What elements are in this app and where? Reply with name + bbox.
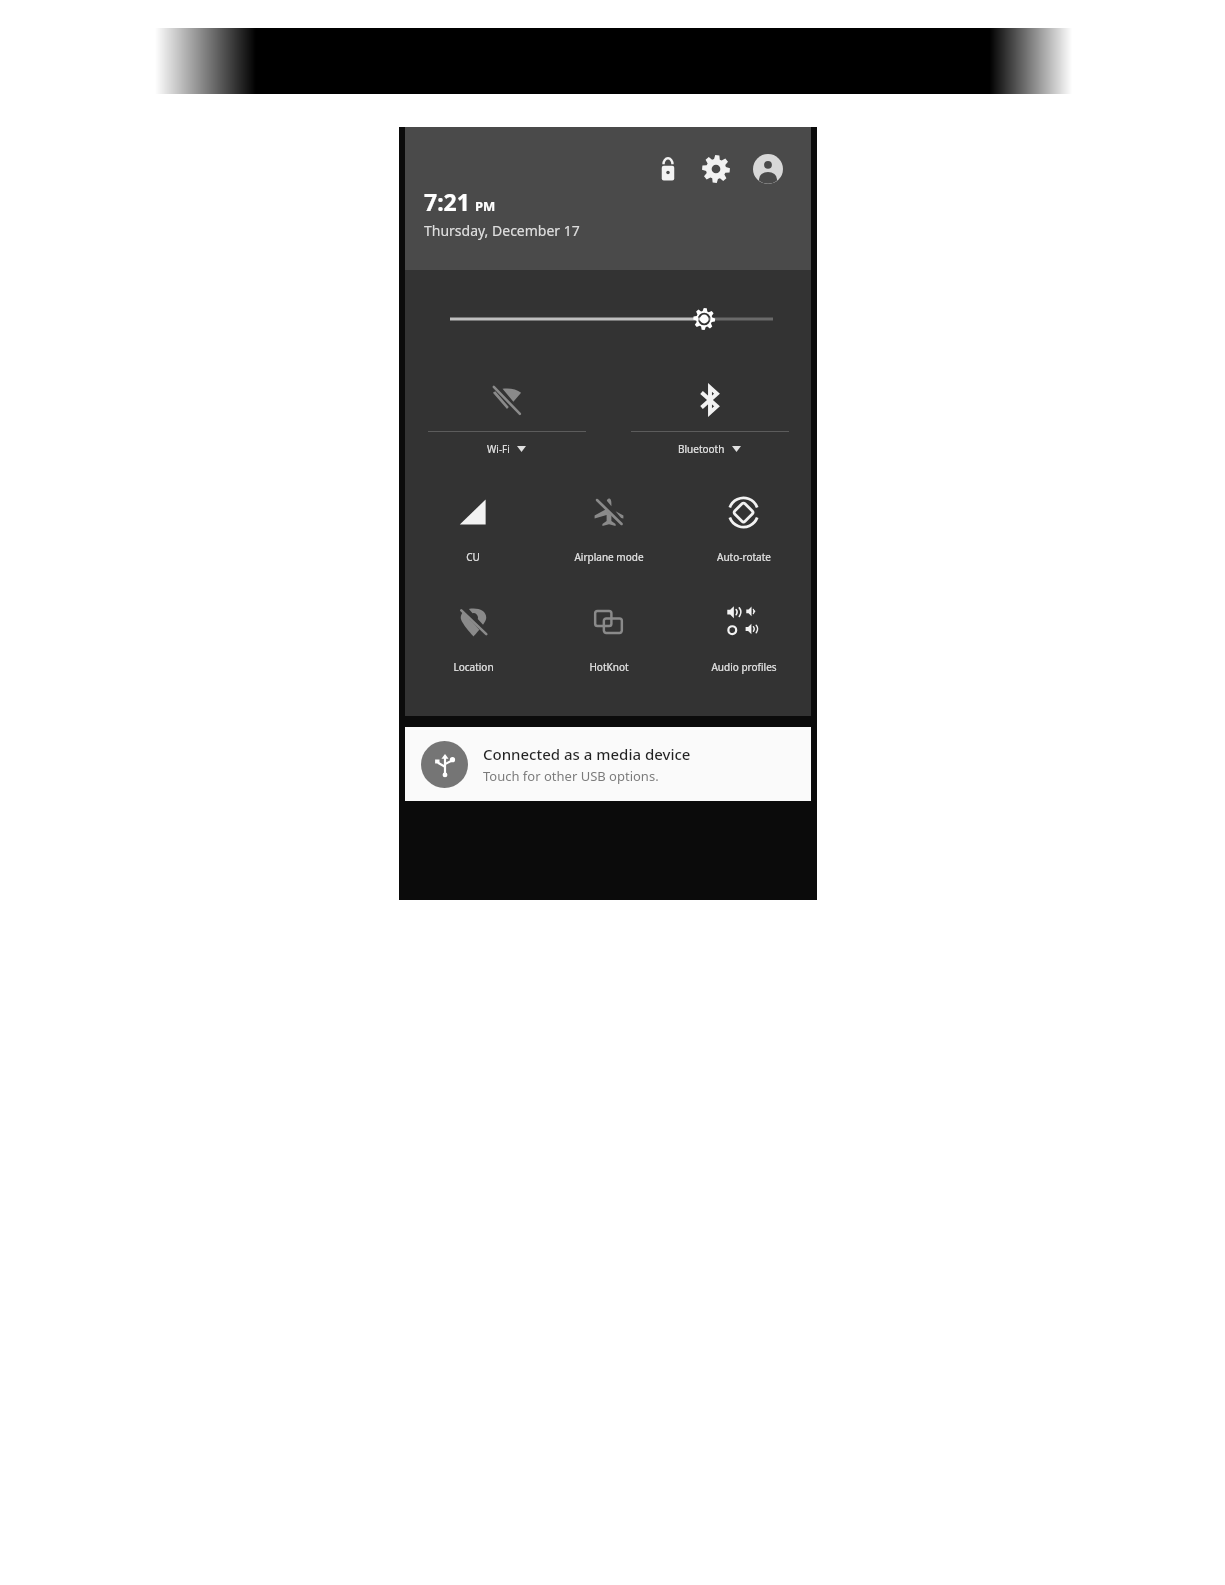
button[interactable]: CU [405, 474, 541, 584]
staticText: CU [466, 550, 480, 564]
staticText: 7:21 [424, 186, 470, 217]
staticText: Airplane mode [574, 550, 644, 564]
button[interactable]: Auto-rotate [676, 474, 811, 584]
button[interactable]: Airplane mode [541, 474, 676, 584]
button[interactable]: Bluetooth [608, 368, 811, 466]
staticText: HotKnot [589, 660, 629, 674]
staticText: Auto-rotate [717, 550, 771, 564]
button[interactable]: Location [405, 584, 541, 694]
button[interactable]: Settings [697, 150, 735, 188]
staticText: Audio profiles [711, 660, 777, 674]
staticText: Thursday, December 17 [424, 221, 580, 240]
button[interactable]: Connected as a media device [405, 727, 811, 801]
staticText: Bluetooth [678, 442, 725, 456]
staticText: Wi-Fi [487, 442, 510, 456]
button[interactable]: Brightness [405, 270, 811, 368]
button[interactable]: Battery saver [651, 152, 685, 186]
button[interactable]: User account [749, 150, 787, 188]
staticText: Connected as a media device [483, 744, 691, 764]
button[interactable]: Audio profiles [676, 584, 811, 694]
staticText: Touch for other USB options. [483, 767, 659, 785]
staticText: PM [475, 197, 496, 215]
button[interactable]: HotKnot [541, 584, 676, 694]
button[interactable]: Wi-Fi [405, 368, 608, 466]
staticText: Location [453, 660, 494, 674]
